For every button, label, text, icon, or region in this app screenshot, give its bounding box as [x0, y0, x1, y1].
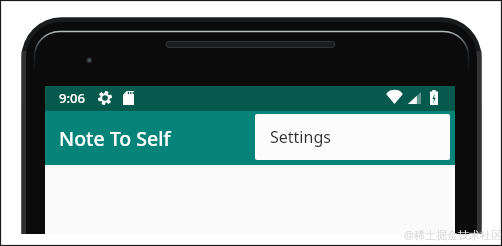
- staticText: @稀土掘金技术社区: [404, 227, 502, 242]
- staticText: Settings: [270, 126, 331, 148]
- staticText: 9:06: [59, 89, 85, 107]
- button[interactable]: Settings: [255, 114, 450, 160]
- staticText: Note To Self: [59, 125, 171, 152]
